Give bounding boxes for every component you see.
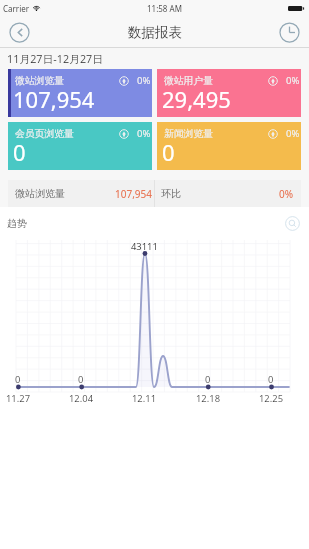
button[interactable]: History xyxy=(279,22,300,43)
button[interactable]: Zoom xyxy=(285,216,300,231)
staticText: 微站浏览量 xyxy=(15,187,65,200)
staticText: 0 xyxy=(15,373,21,386)
staticText: 0% xyxy=(279,187,294,201)
staticText: 0 xyxy=(268,373,274,386)
button[interactable]: 微站浏览量 xyxy=(8,69,152,117)
staticText: 0 xyxy=(205,373,211,386)
staticText: 11.27 xyxy=(6,392,31,405)
staticText: 0 xyxy=(162,137,175,167)
staticText: 11:58 AM xyxy=(147,3,182,14)
button[interactable]: 新闻浏览量 xyxy=(157,122,301,170)
staticText: 新闻浏览量 xyxy=(164,128,213,140)
staticText: 会员页浏览量 xyxy=(15,128,74,140)
button[interactable]: 会员页浏览量 xyxy=(8,122,152,170)
staticText: 29,495 xyxy=(162,84,231,114)
staticText: 0% xyxy=(286,127,300,140)
staticText: 微站用户量 xyxy=(164,75,213,87)
staticText: 0% xyxy=(137,127,151,140)
button[interactable]: Back xyxy=(9,22,30,43)
staticText: 107,954 xyxy=(115,187,152,201)
staticText: 0% xyxy=(137,74,151,87)
staticText: 0 xyxy=(13,137,26,167)
staticText: 环比 xyxy=(161,187,181,200)
staticText: 12.11 xyxy=(132,392,157,405)
staticText: 12.04 xyxy=(69,392,94,405)
staticText: Carrier xyxy=(3,3,30,14)
staticText: 12.18 xyxy=(196,392,221,405)
staticText: 107,954 xyxy=(13,84,95,114)
staticText: 11月27日-12月27日 xyxy=(7,51,104,66)
staticText: 0% xyxy=(286,74,300,87)
staticText: 微站浏览量 xyxy=(15,75,64,87)
staticText: 数据报表 xyxy=(128,24,182,41)
staticText: 趋势 xyxy=(7,217,27,230)
button[interactable]: 微站用户量 xyxy=(157,69,301,117)
staticText: 43111 xyxy=(131,240,158,253)
staticText: 12.25 xyxy=(259,392,284,405)
staticText: 0 xyxy=(78,373,84,386)
